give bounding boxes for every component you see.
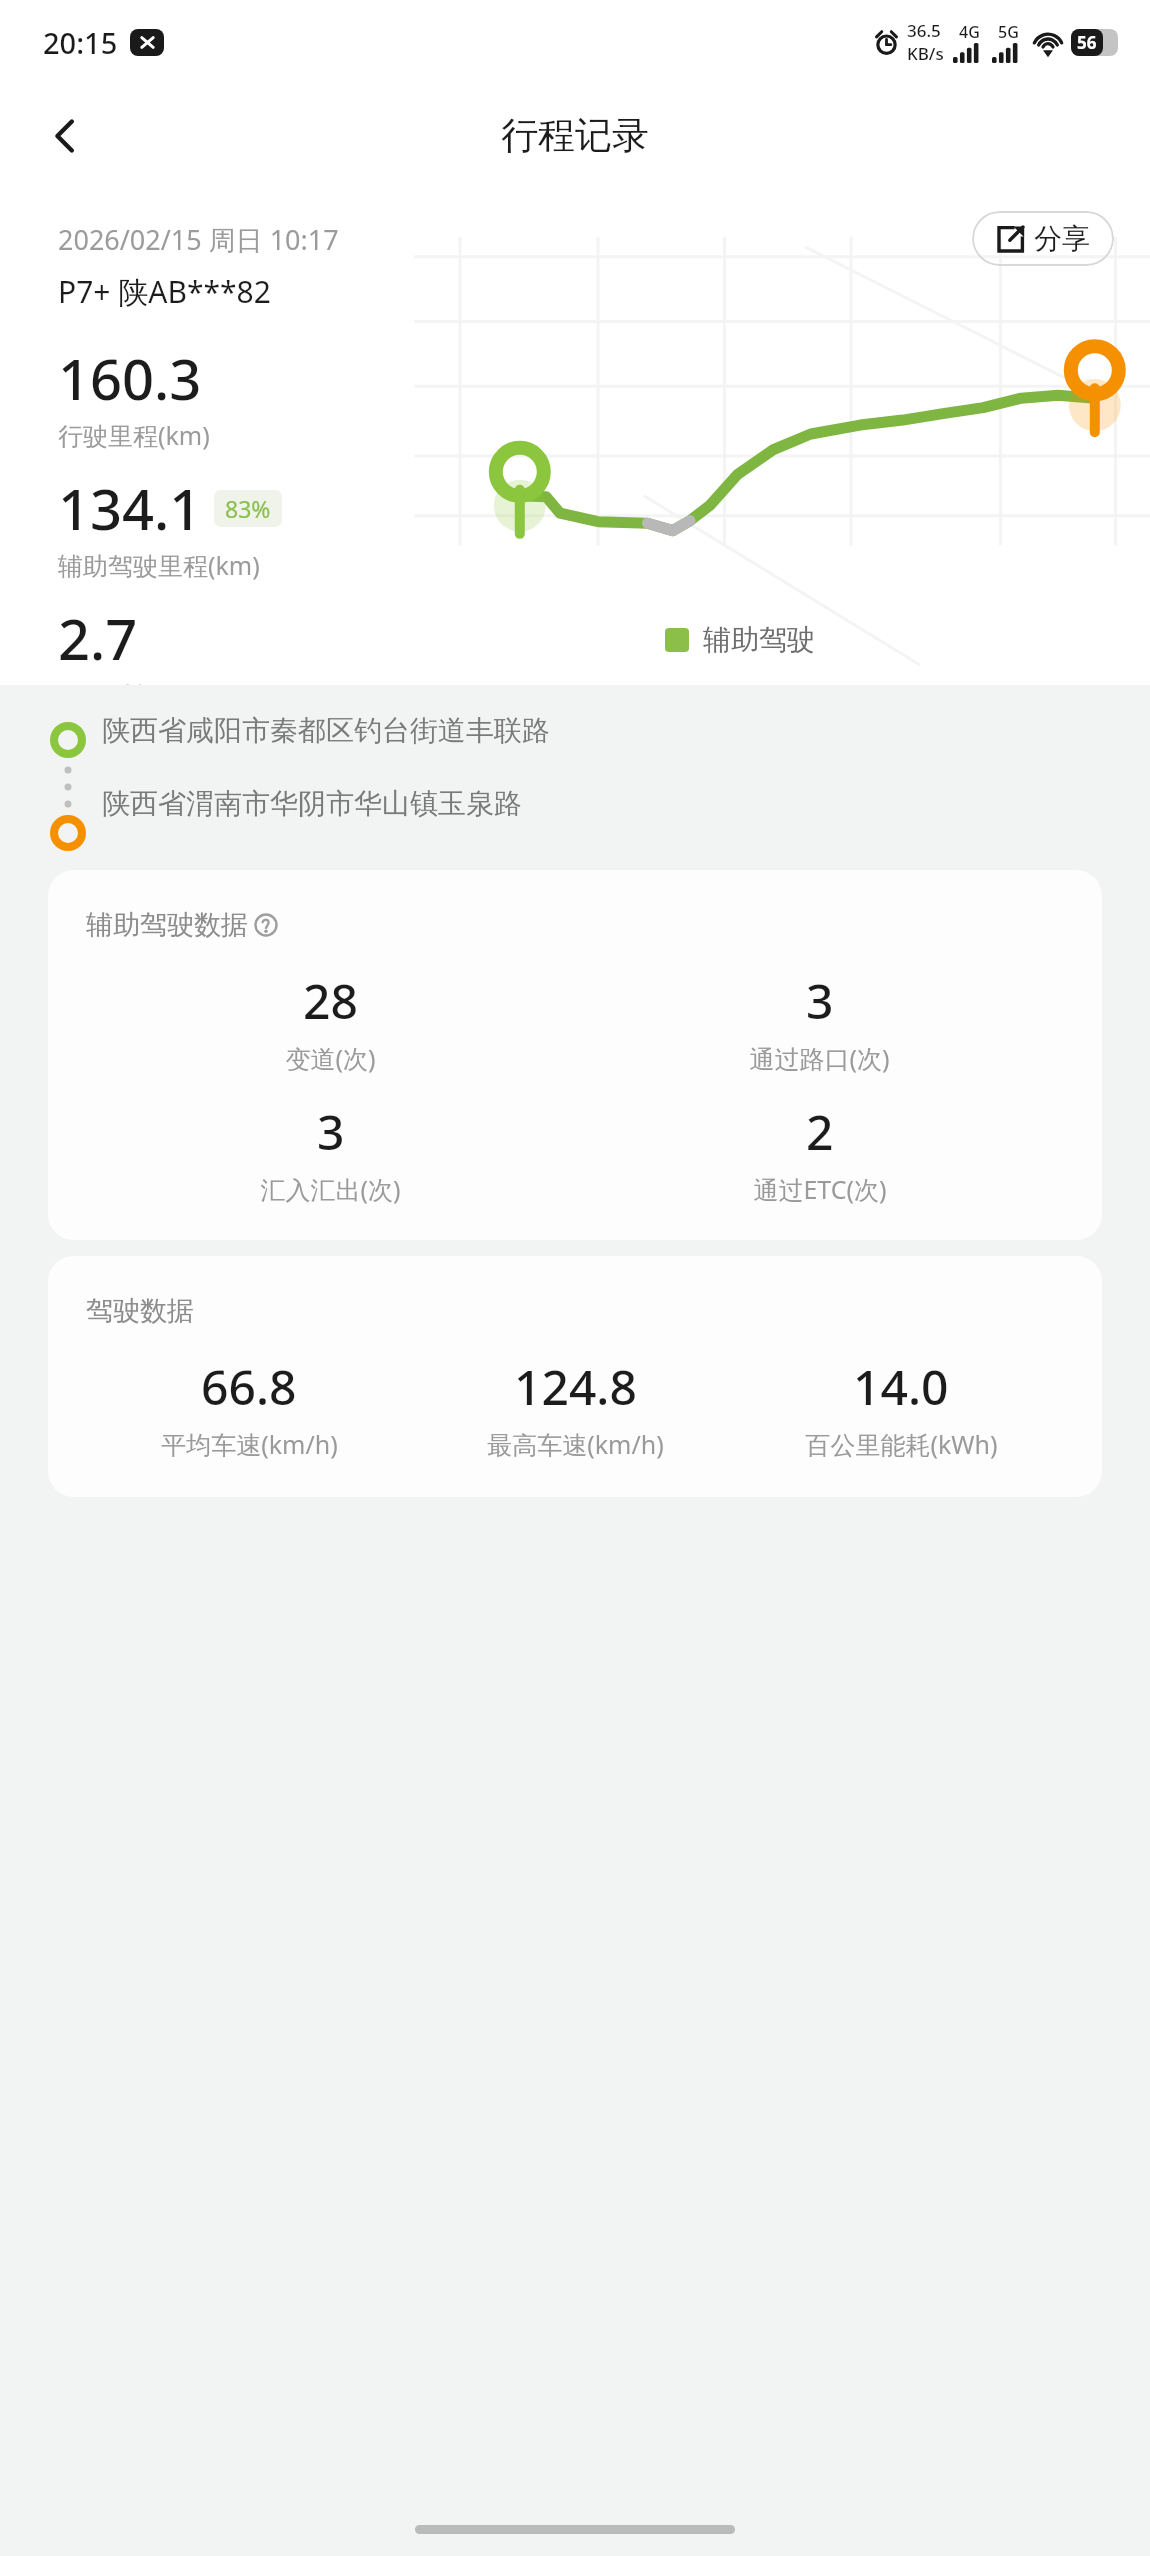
button[interactable]: 66.8 [86, 1354, 412, 1461]
staticText: 56 [1077, 31, 1097, 54]
staticText: 4G [959, 21, 980, 43]
staticText: 14.0 [853, 1354, 949, 1419]
staticText: 平均车速(km/h) [161, 1427, 338, 1461]
staticText: 134.1 [58, 470, 202, 546]
button[interactable]: 陕西省渭南市华阴市华山镇玉泉路 [102, 786, 1150, 821]
staticText: 辅助驾驶里程(km) [58, 548, 260, 582]
button[interactable]: 2 [575, 1099, 1064, 1206]
staticText: 2026/02/15 周日 10:17 [58, 221, 339, 258]
staticText: KB/s [907, 42, 944, 65]
staticText: 5G [998, 21, 1019, 43]
button[interactable]: 28 [86, 968, 575, 1075]
button[interactable]: 3 [575, 968, 1064, 1075]
staticText: P7+ 陕AB***82 [58, 271, 271, 312]
staticText: 20:15 [43, 23, 118, 62]
staticText: 分享 [1034, 221, 1090, 256]
staticText: 陕西省咸阳市秦都区钓台街道丰联路 [102, 713, 550, 748]
button[interactable]: 3 [86, 1099, 575, 1206]
staticText: 最高车速(km/h) [487, 1427, 664, 1461]
staticText: 83% [225, 493, 271, 524]
staticText: 百公里能耗(kWh) [805, 1427, 998, 1461]
staticText: 行程记录 [501, 112, 649, 159]
staticText: 变道(次) [285, 1041, 376, 1075]
button[interactable]: 124.8 [412, 1354, 738, 1461]
button[interactable]: 陕西省咸阳市秦都区钓台街道丰联路 [102, 713, 1150, 748]
button[interactable]: Help [253, 912, 279, 938]
staticText: 通过ETC(次) [753, 1172, 887, 1206]
staticText: 行驶里程(km) [58, 418, 210, 452]
staticText: 2.7 [58, 600, 138, 676]
button[interactable]: 分享 [972, 211, 1114, 266]
staticText: 2 [806, 1099, 834, 1164]
button[interactable]: Back [30, 101, 100, 171]
staticText: 通过路口(次) [749, 1041, 890, 1075]
staticText: 124.8 [514, 1354, 637, 1419]
staticText: 汇入汇出(次) [260, 1172, 401, 1206]
staticText: 陕西省渭南市华阴市华山镇玉泉路 [102, 786, 522, 821]
staticText: 3 [317, 1099, 345, 1164]
staticText: 3 [806, 968, 834, 1033]
staticText: 辅助驾驶 [703, 622, 815, 657]
staticText: 160.3 [58, 340, 202, 416]
staticText: 驾驶数据 [86, 1294, 194, 1328]
staticText: 66.8 [201, 1354, 297, 1419]
staticText: 36.5 [907, 19, 941, 42]
button[interactable]: 14.0 [738, 1354, 1064, 1461]
staticText: 辅助驾驶数据 [86, 908, 248, 942]
staticText: 28 [303, 968, 358, 1033]
